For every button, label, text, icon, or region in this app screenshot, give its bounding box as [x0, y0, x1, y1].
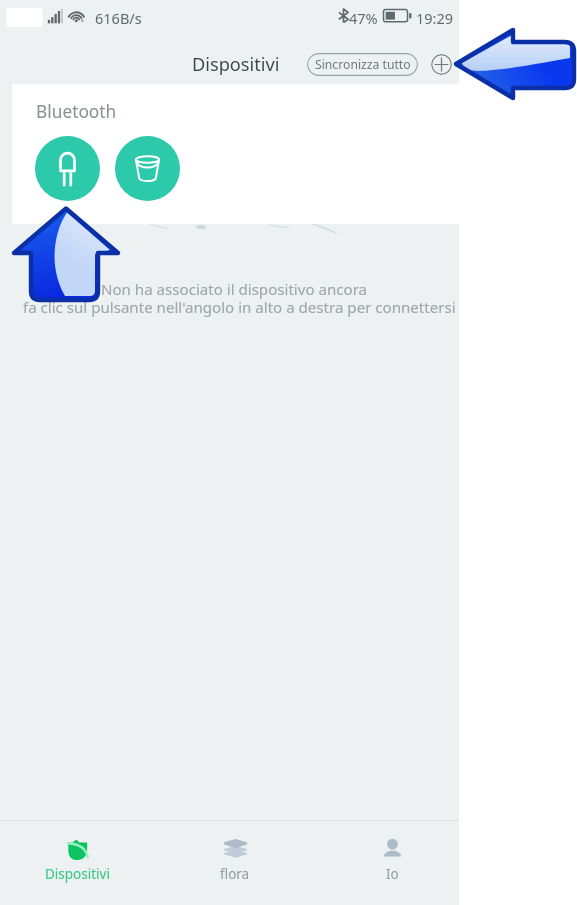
staticText: fa clic sul pulsante nell'angolo in alto…: [23, 297, 456, 318]
button[interactable]: Sensore Flower Care: [35, 136, 100, 201]
staticText: flora: [220, 865, 250, 883]
staticText: Io: [386, 865, 399, 883]
staticText: Dispositivi: [192, 52, 280, 77]
button[interactable]: flora: [183, 821, 287, 905]
button[interactable]: Vaso: [115, 136, 180, 201]
staticText: Bluetooth: [36, 100, 117, 124]
button[interactable]: Io: [340, 821, 444, 905]
staticText: Sincronizza tutto: [315, 56, 411, 73]
button[interactable]: Dispositivi: [25, 821, 129, 905]
staticText: 47%: [349, 8, 378, 28]
staticText: Non ha associato il dispositivo ancora: [101, 279, 368, 300]
staticText: Dispositivi: [45, 865, 110, 883]
staticText: 19:29: [416, 8, 454, 28]
button[interactable]: Aggiungi dispositivo: [431, 54, 452, 75]
staticText: 616B/s: [95, 8, 142, 28]
button[interactable]: Sincronizza tutto: [307, 53, 418, 76]
